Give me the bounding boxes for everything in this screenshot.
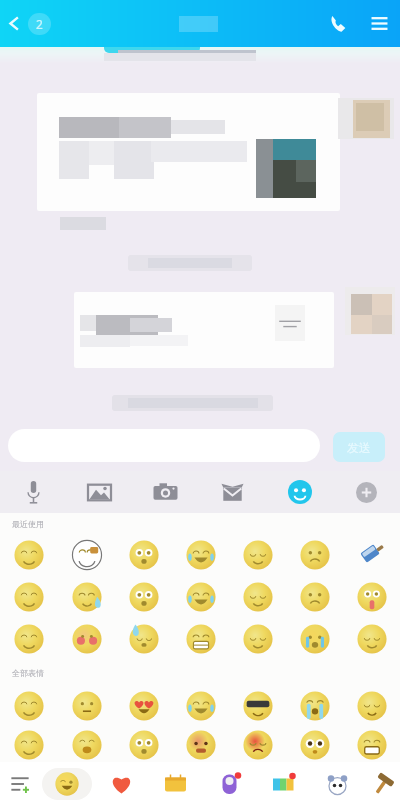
button[interactable]: Emoji 23 — [115, 685, 172, 727]
button[interactable]: Emoji 18 — [229, 618, 286, 660]
button[interactable]: Emoji 31 — [172, 727, 229, 762]
button[interactable]: 发送 — [333, 432, 385, 462]
button[interactable]: Emoji 6 — [343, 534, 400, 576]
button[interactable]: Emoji 3 — [172, 534, 229, 576]
button[interactable]: Emoji 12 — [286, 576, 343, 618]
button[interactable]: Camera — [132, 471, 199, 513]
button[interactable]: Category 7 — [364, 762, 400, 806]
button[interactable]: Emoji 0 — [0, 534, 58, 576]
staticText: 全部表情 — [12, 668, 44, 678]
button[interactable]: Message 1 — [37, 93, 340, 211]
button[interactable]: Category 2 — [94, 762, 148, 806]
button[interactable]: Emoji 26 — [286, 685, 343, 727]
button[interactable]: Category 3 — [148, 762, 202, 806]
button[interactable]: Emoji 29 — [58, 727, 115, 762]
button[interactable]: Emoji 27 — [343, 685, 400, 727]
button[interactable]: Category 1 — [40, 762, 94, 806]
button[interactable]: Emoji 8 — [58, 576, 115, 618]
button[interactable]: Emoji 1 — [58, 534, 115, 576]
button[interactable]: Voice — [0, 471, 66, 513]
button[interactable]: Back — [0, 0, 28, 47]
button[interactable]: Emoji 20 — [343, 618, 400, 660]
button[interactable]: Mail — [199, 471, 266, 513]
button[interactable]: Emoji 2 — [115, 534, 172, 576]
button[interactable]: Emoji 4 — [229, 534, 286, 576]
button[interactable]: Emoji 10 — [172, 576, 229, 618]
button[interactable]: Menu — [358, 0, 400, 47]
button[interactable]: Emoji 33 — [286, 727, 343, 762]
button[interactable]: Emoji — [266, 471, 333, 513]
button[interactable]: Gallery — [66, 471, 132, 513]
button[interactable]: Emoji 5 — [286, 534, 343, 576]
button[interactable]: Emoji 30 — [115, 727, 172, 762]
button[interactable]: Unread 2 — [28, 13, 51, 35]
staticText: 最近使用 — [12, 519, 44, 529]
button[interactable]: Emoji 15 — [58, 618, 115, 660]
button[interactable]: Emoji 19 — [286, 618, 343, 660]
button[interactable]: Emoji 28 — [0, 727, 58, 762]
button[interactable]: Message 2 — [74, 292, 334, 368]
button[interactable]: Emoji 13 — [343, 576, 400, 618]
button[interactable]: Emoji 32 — [229, 727, 286, 762]
button[interactable]: Emoji settings — [0, 762, 40, 806]
button[interactable]: Call — [318, 0, 358, 47]
button[interactable]: Emoji 16 — [115, 618, 172, 660]
button[interactable]: Emoji 25 — [229, 685, 286, 727]
button[interactable]: Emoji 17 — [172, 618, 229, 660]
button[interactable]: Emoji 9 — [115, 576, 172, 618]
button[interactable]: Emoji 11 — [229, 576, 286, 618]
button[interactable]: Emoji 14 — [0, 618, 58, 660]
staticText: 2 — [36, 16, 43, 32]
staticText: 发送 — [347, 440, 371, 455]
button[interactable]: Emoji 21 — [0, 685, 58, 727]
button[interactable]: Emoji 34 — [343, 727, 400, 762]
button[interactable]: More — [333, 471, 400, 513]
button[interactable]: Emoji 24 — [172, 685, 229, 727]
button[interactable]: Category 6 — [310, 762, 364, 806]
button[interactable]: Category 5 — [256, 762, 310, 806]
button[interactable]: Emoji 22 — [58, 685, 115, 727]
button[interactable]: Category 4 — [202, 762, 256, 806]
button[interactable]: Emoji 7 — [0, 576, 58, 618]
